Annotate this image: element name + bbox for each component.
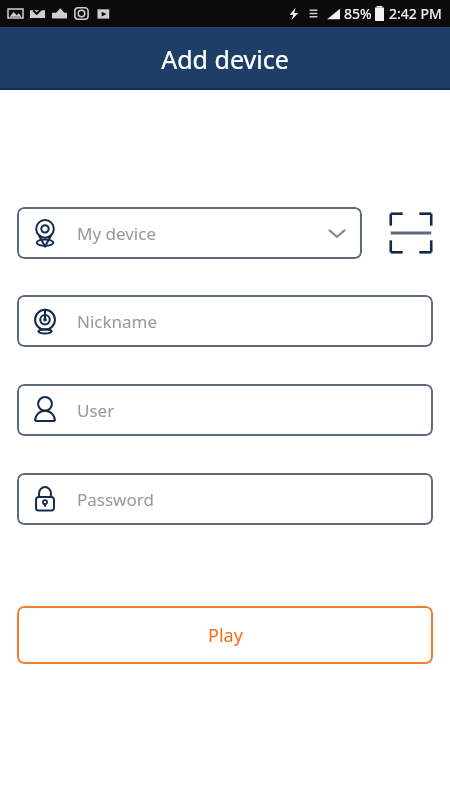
staticText: Nickname <box>77 310 419 333</box>
button[interactable]: Play <box>17 606 433 664</box>
button[interactable]: Nickname <box>17 295 433 347</box>
staticText: Play <box>208 623 243 648</box>
staticText: My device <box>77 222 326 245</box>
staticText: Password <box>77 488 419 511</box>
staticText: User <box>77 399 419 422</box>
button[interactable]: My device <box>17 207 362 259</box>
button[interactable]: User <box>17 384 433 436</box>
button[interactable]: Password <box>17 473 433 525</box>
button[interactable]: Scan QR code <box>388 210 434 256</box>
staticText: Add device <box>161 42 289 76</box>
staticText: 85% <box>344 4 372 23</box>
staticText: 2:42 PM <box>389 4 442 23</box>
